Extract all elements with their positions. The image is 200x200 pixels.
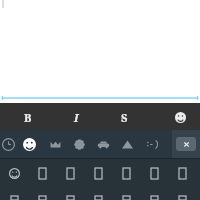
- button[interactable]: Backspace: [172, 130, 200, 158]
- staticText: I: [74, 110, 79, 125]
- button[interactable]: S: [115, 108, 133, 126]
- button[interactable]: Emoji: [56, 166, 84, 180]
- button[interactable]: Emoji: [0, 196, 28, 200]
- button[interactable]: Emoji: [84, 196, 112, 200]
- button[interactable]: Emoji: [0, 166, 28, 180]
- button[interactable]: Emoji: [171, 108, 189, 126]
- button[interactable]: Objects: [115, 130, 139, 158]
- button[interactable]: Emoji: [112, 196, 140, 200]
- button[interactable]: Emoji: [140, 166, 168, 180]
- button[interactable]: Nature: [68, 130, 91, 158]
- button[interactable]: Emoji: [28, 166, 56, 180]
- button[interactable]: Recent: [0, 130, 17, 158]
- staticText: S: [121, 110, 128, 125]
- button[interactable]: Smileys: [17, 130, 42, 158]
- button[interactable]: Emoji: [28, 196, 56, 200]
- button[interactable]: B: [19, 108, 37, 126]
- button[interactable]: Emoji: [168, 196, 196, 200]
- button[interactable]: Emoji: [112, 166, 140, 180]
- button[interactable]: Emoticons: [139, 130, 164, 158]
- button[interactable]: Travel: [91, 130, 115, 158]
- button[interactable]: I: [67, 108, 85, 126]
- button[interactable]: Emoji: [56, 196, 84, 200]
- button[interactable]: Emoji: [84, 166, 112, 180]
- button[interactable]: People: [42, 130, 68, 158]
- staticText: B: [24, 110, 32, 125]
- button[interactable]: Emoji: [140, 196, 168, 200]
- button[interactable]: [0, 0, 200, 103]
- button[interactable]: Emoji: [168, 166, 196, 180]
